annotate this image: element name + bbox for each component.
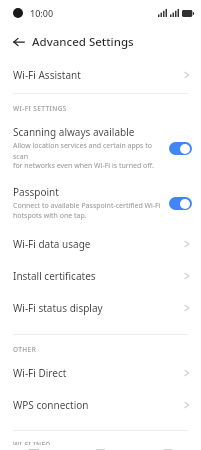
staticText: Passpoint [13, 185, 59, 199]
button[interactable]: WPS connection [0, 389, 201, 421]
button[interactable]: Scanning always available [0, 118, 201, 178]
staticText: Wi-Fi status display [13, 301, 184, 315]
staticText: WPS connection [13, 398, 184, 412]
staticText: 10:00 [30, 7, 54, 19]
button[interactable]: Toggle [169, 197, 192, 210]
staticText: WI-FI SETTINGS [13, 104, 201, 113]
staticText: hotspots with one tap. [13, 211, 87, 221]
staticText: WI-FI INFO [13, 440, 201, 445]
button[interactable]: Wi-Fi status display [0, 292, 201, 324]
button[interactable]: Wi-Fi Assistant [0, 58, 201, 93]
staticText: Scanning always available [13, 125, 135, 139]
staticText: Advanced Settings [32, 34, 134, 50]
button[interactable]: Wi-Fi data usage [0, 228, 201, 260]
staticText: Install certificates [13, 269, 184, 283]
staticText: Wi-Fi data usage [13, 237, 184, 251]
staticText: for networks even when Wi-Fi is turned o… [13, 161, 154, 171]
staticText: Allow location services and certain apps… [13, 141, 164, 161]
staticText: Wi-Fi Assistant [13, 68, 184, 82]
button[interactable]: Back [8, 31, 30, 53]
staticText: Wi-Fi Direct [13, 366, 184, 380]
button[interactable]: Passpoint [0, 178, 201, 228]
staticText: OTHER [13, 345, 201, 354]
staticText: Connect to available Passpoint-certified… [13, 201, 161, 211]
button[interactable]: Install certificates [0, 260, 201, 292]
button[interactable]: Wi-Fi Direct [0, 359, 201, 389]
button[interactable]: Toggle [169, 142, 192, 155]
